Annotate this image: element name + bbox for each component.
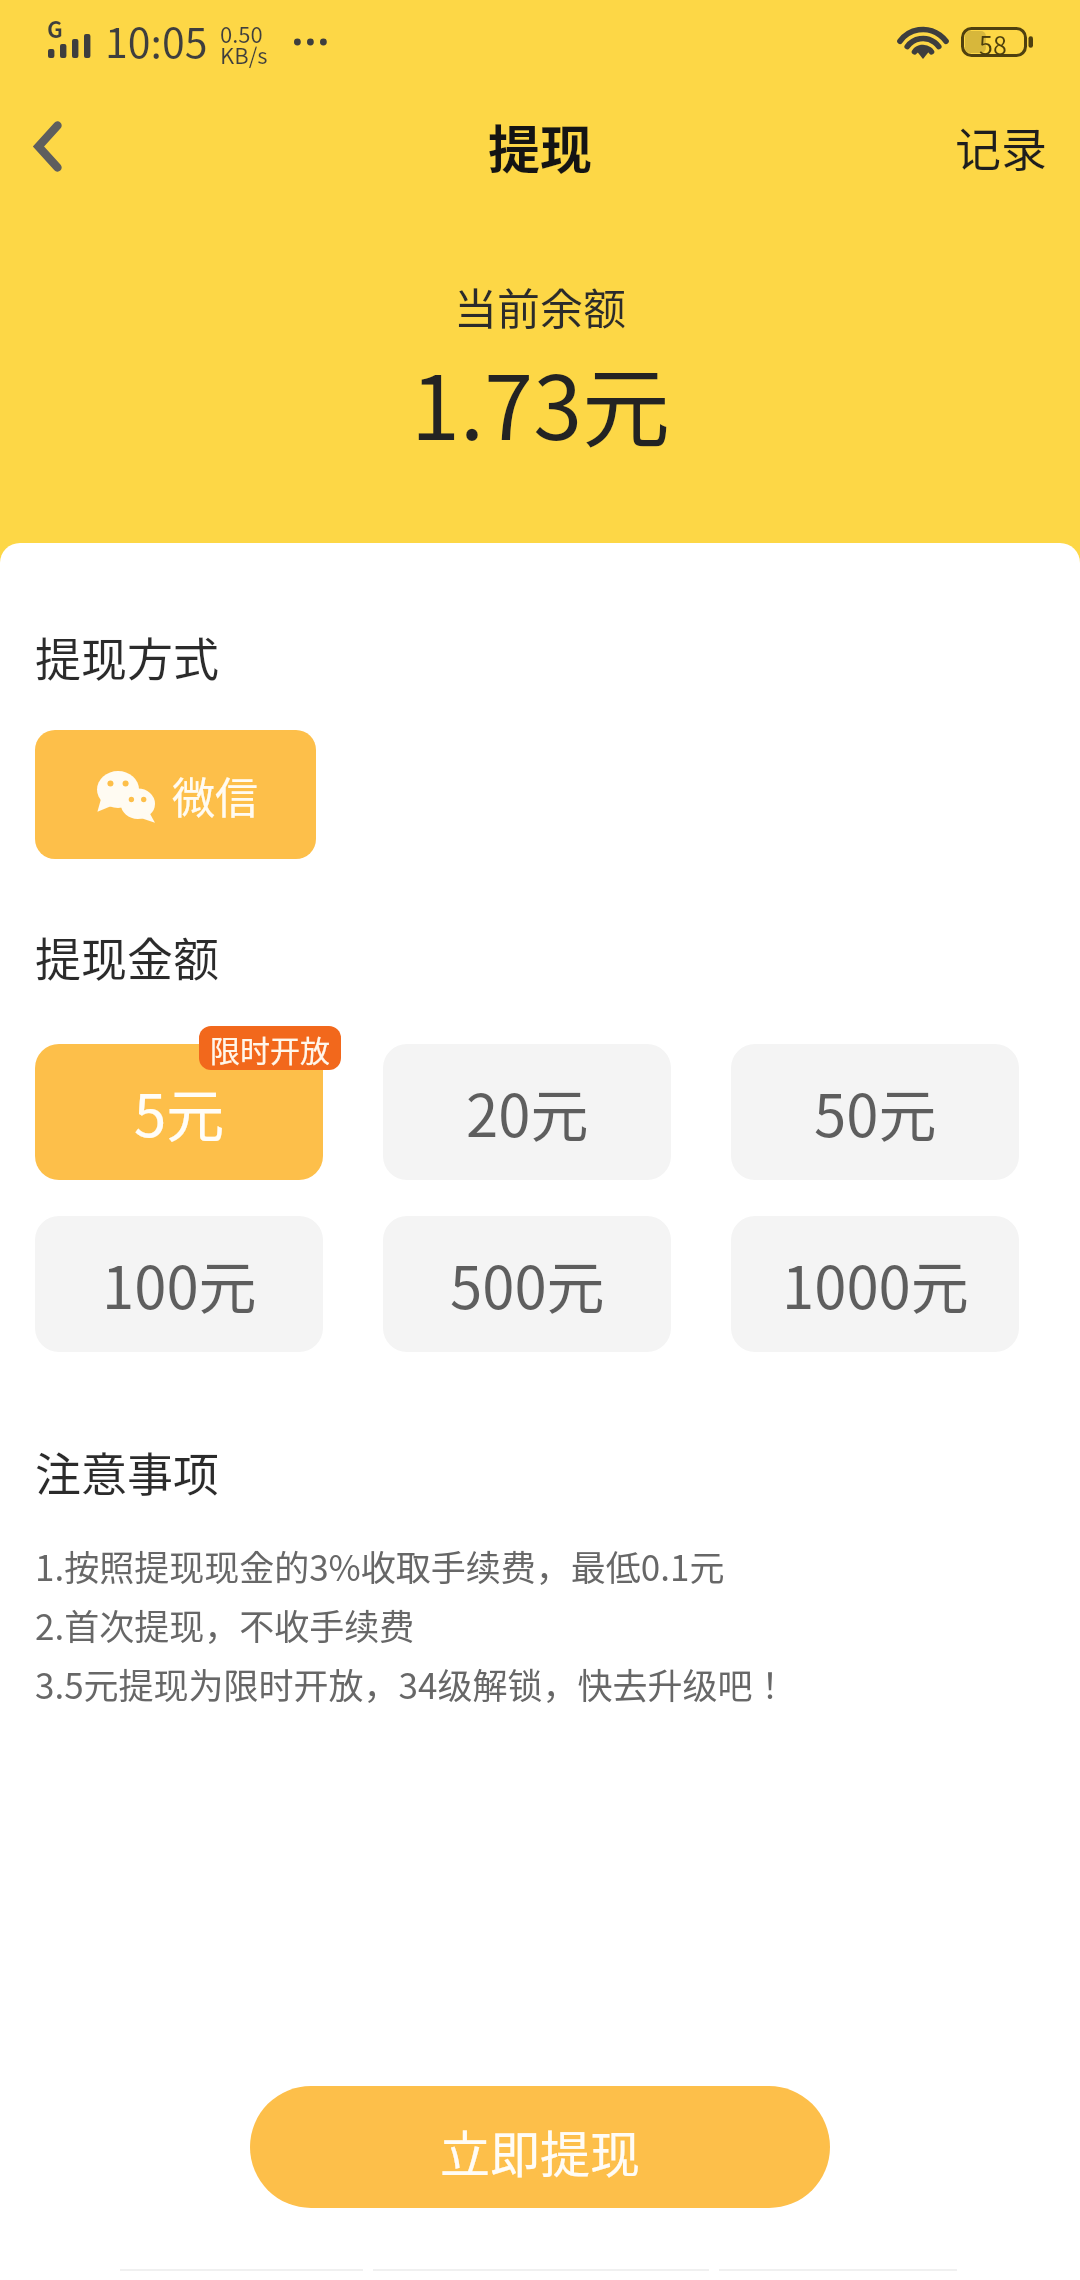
button[interactable]: 500元 bbox=[383, 1216, 671, 1352]
button[interactable]: 微信 bbox=[35, 730, 316, 859]
button[interactable]: 5元 bbox=[35, 1044, 323, 1180]
button[interactable]: 100元 bbox=[35, 1216, 323, 1352]
button[interactable]: 立即提现 bbox=[250, 2086, 830, 2208]
staticText: 58 bbox=[979, 26, 1007, 56]
button[interactable]: Back bbox=[0, 91, 98, 201]
staticText: 立即提现 bbox=[440, 2115, 640, 2187]
staticText: 1000元 bbox=[782, 1242, 969, 1326]
staticText: G bbox=[47, 12, 63, 44]
staticText: 10:05 bbox=[105, 10, 208, 69]
staticText: 提现金额 bbox=[35, 923, 219, 990]
staticText: 50元 bbox=[814, 1070, 937, 1154]
staticText: 1.73元 bbox=[411, 338, 670, 465]
staticText: 注意事项 bbox=[35, 1438, 219, 1505]
staticText: 100元 bbox=[102, 1242, 257, 1326]
staticText: 记录 bbox=[955, 113, 1047, 180]
staticText: 提现 bbox=[488, 109, 593, 184]
staticText: 2.首次提现，不收手续费 bbox=[35, 1599, 415, 1650]
staticText: 5元 bbox=[134, 1070, 225, 1154]
staticText: 500元 bbox=[450, 1242, 605, 1326]
staticText: 1.按照提现现金的3%收取手续费，最低0.1元 bbox=[35, 1540, 725, 1591]
staticText: 提现方式 bbox=[35, 623, 219, 690]
button[interactable]: 20元 bbox=[383, 1044, 671, 1180]
button[interactable]: 记录 bbox=[955, 113, 1047, 180]
staticText: 当前余额 bbox=[454, 275, 626, 337]
staticText: 20元 bbox=[466, 1070, 589, 1154]
staticText: 0.50 KB/s bbox=[220, 17, 268, 70]
staticText: 3.5元提现为限时开放，34级解锁，快去升级吧！ bbox=[35, 1658, 788, 1709]
button[interactable]: 1000元 bbox=[731, 1216, 1019, 1352]
button[interactable]: 50元 bbox=[731, 1044, 1019, 1180]
staticText: 微信 bbox=[172, 764, 258, 826]
staticText: 限时开放 bbox=[210, 1027, 330, 1070]
